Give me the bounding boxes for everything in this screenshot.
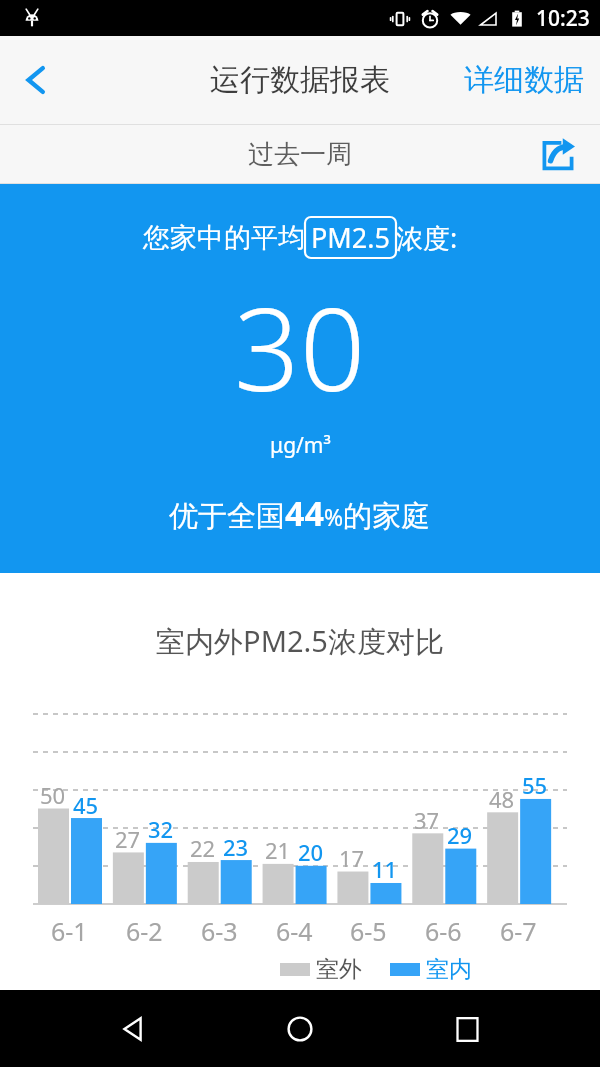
staticText: 详细数据 [464, 61, 584, 99]
staticText: 45 [73, 790, 99, 820]
staticText: 6-7 [500, 914, 537, 948]
staticText: 27 [115, 824, 141, 854]
staticText: 23 [223, 832, 249, 862]
staticText: 6-4 [276, 914, 313, 948]
staticText: 32 [148, 814, 174, 844]
staticText: 6-6 [425, 914, 462, 948]
staticText: 过去一周 [248, 138, 352, 171]
staticText: 30 [234, 268, 366, 425]
staticText: 运行数据报表 [210, 61, 390, 99]
staticText: μg/m³ [270, 431, 331, 460]
staticText: 11 [372, 854, 398, 884]
staticText: 50 [40, 780, 66, 810]
staticText: 室外 [316, 955, 362, 984]
staticText: 6-1 [51, 914, 88, 948]
staticText: 20 [298, 837, 324, 867]
staticText: 室内外PM2.5浓度对比 [0, 621, 600, 661]
staticText: 您家中的平均 [143, 221, 305, 255]
staticText: 室内 [426, 955, 472, 984]
staticText: 浓度: [396, 219, 458, 256]
staticText: 优于全国44%的家庭 [169, 490, 431, 536]
button[interactable]: Back [0, 36, 72, 124]
staticText: 21 [265, 835, 291, 865]
button[interactable]: 详细数据 [448, 36, 600, 124]
button[interactable]: Home [267, 996, 333, 1062]
staticText: 17 [339, 843, 365, 873]
staticText: 6-3 [201, 914, 238, 948]
staticText: PM2.5 [311, 219, 390, 256]
button[interactable]: Back [101, 996, 167, 1062]
staticText: 22 [190, 833, 216, 863]
staticText: 37 [414, 805, 440, 835]
staticText: 48 [489, 784, 515, 814]
staticText: 6-5 [350, 914, 387, 948]
staticText: 29 [447, 820, 473, 850]
staticText: 6-2 [126, 914, 163, 948]
button[interactable]: Recent apps [434, 996, 500, 1062]
staticText: 55 [522, 770, 548, 800]
button[interactable]: Share [532, 128, 584, 180]
staticText: 10:23 [536, 4, 590, 33]
